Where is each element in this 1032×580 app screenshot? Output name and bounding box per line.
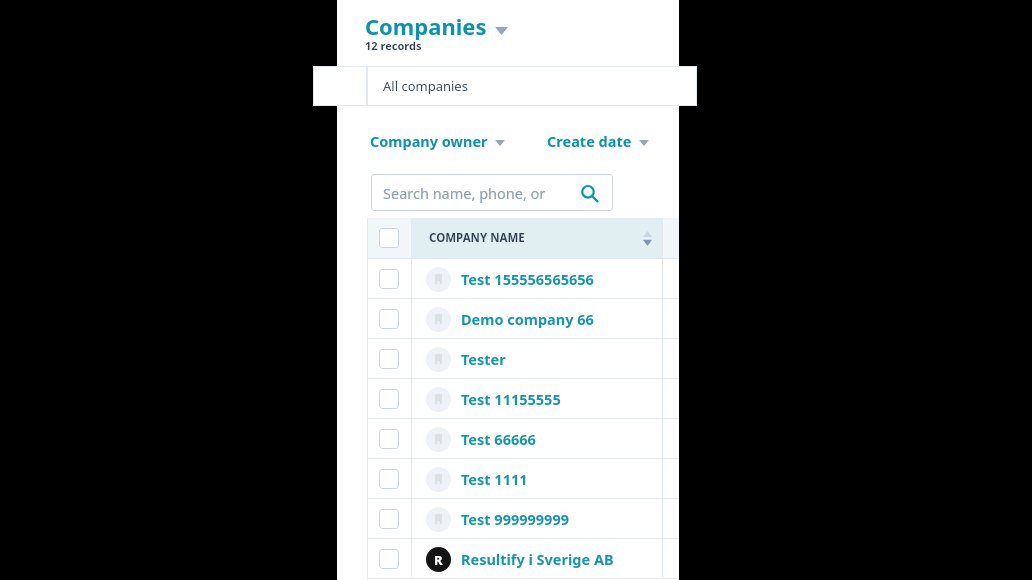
staticText: Resultify i Sverige AB (461, 549, 614, 569)
staticText: Test 999999999 (461, 509, 569, 529)
button[interactable]: Search (578, 182, 600, 204)
staticText: Search name, phone, or (383, 183, 546, 203)
staticText: Companies (365, 11, 487, 41)
button[interactable]: Select (367, 419, 679, 459)
button[interactable]: Select (379, 349, 399, 369)
button[interactable]: Select (379, 469, 399, 489)
button[interactable]: Select (367, 259, 679, 299)
button[interactable]: Select (367, 499, 679, 539)
button[interactable]: Select (367, 299, 679, 339)
staticText: Test 1111 (461, 469, 528, 489)
button[interactable]: Select (367, 379, 679, 419)
staticText: Company owner (370, 131, 488, 151)
staticText: Tester (461, 349, 506, 369)
staticText: Demo company 66 (461, 309, 594, 329)
staticText: COMPANY NAME (429, 230, 525, 246)
button[interactable]: Select (379, 509, 399, 529)
staticText: Create date (547, 131, 632, 151)
button[interactable]: Select (367, 539, 679, 579)
button[interactable]: Companies (365, 11, 508, 41)
button[interactable]: Select (367, 459, 679, 499)
button[interactable]: COMPANY NAME (412, 218, 662, 258)
button[interactable]: Select (379, 389, 399, 409)
button[interactable]: Select (379, 549, 399, 569)
staticText: Test 155556565656 (461, 269, 594, 289)
button[interactable]: Select (379, 429, 399, 449)
button[interactable]: All companies (367, 66, 697, 106)
button[interactable]: Select (379, 228, 399, 248)
button[interactable]: Select (367, 339, 679, 379)
button[interactable]: Search name, phone, or (371, 174, 613, 211)
staticText: Test 66666 (461, 429, 536, 449)
button[interactable]: Company owner (370, 131, 505, 151)
button[interactable]: Select (379, 269, 399, 289)
button[interactable]: Select (379, 309, 399, 329)
staticText: R (434, 551, 443, 569)
button[interactable]: Create date (547, 131, 649, 151)
staticText: 12 records (365, 38, 422, 53)
staticText: All companies (383, 77, 468, 95)
staticText: Test 11155555 (461, 389, 561, 409)
